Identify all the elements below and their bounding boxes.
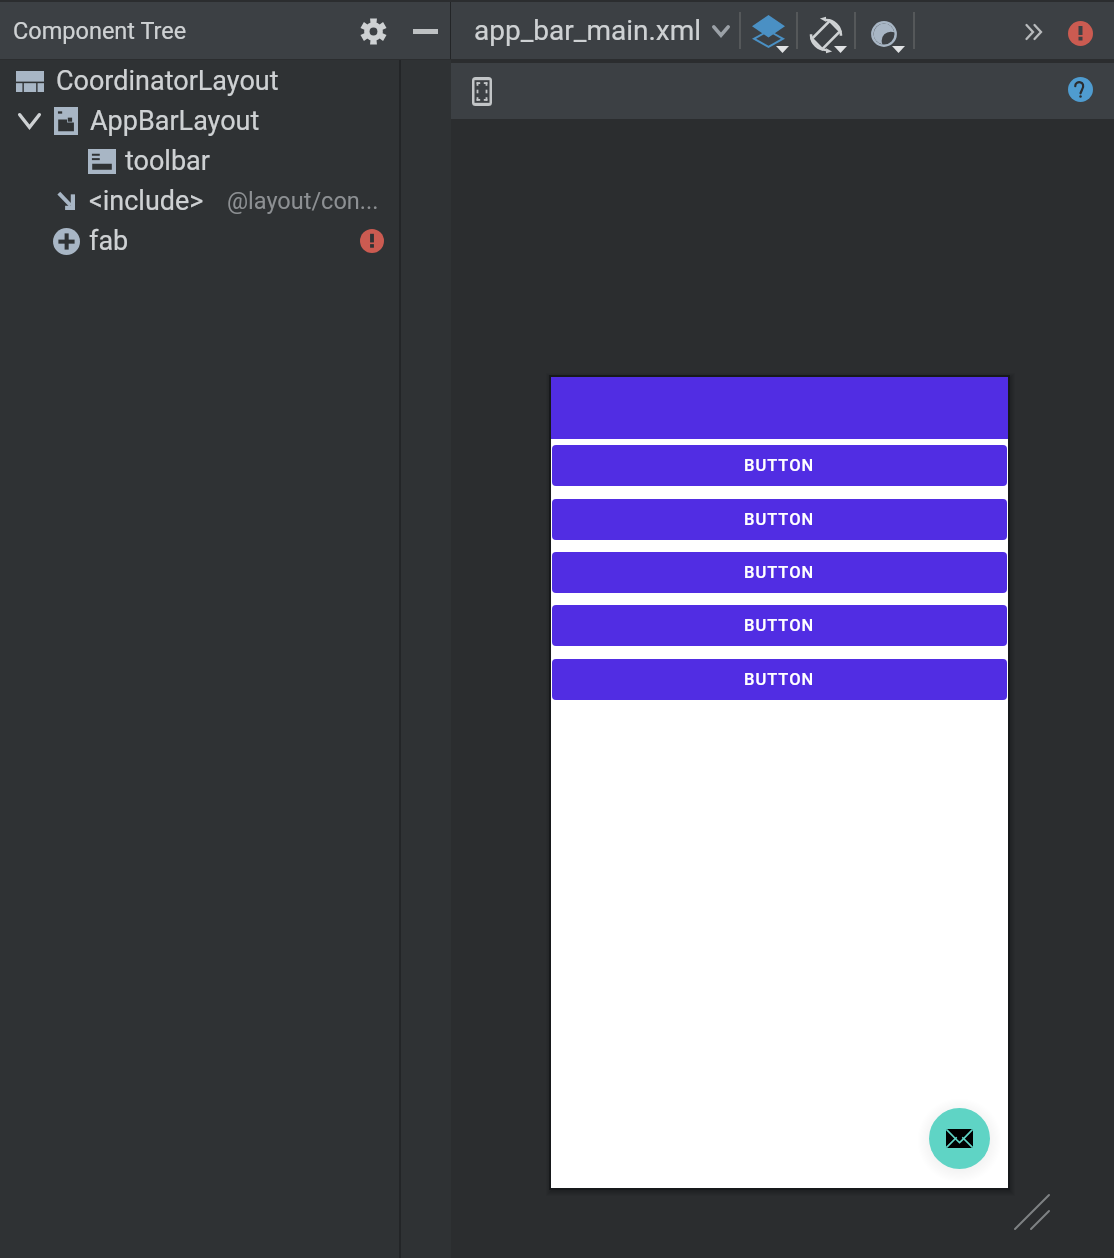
- button[interactable]: BUTTON: [552, 659, 1007, 700]
- button[interactable]: CoordinatorLayout: [0, 61, 399, 101]
- staticText: app_bar_main.xml: [474, 14, 702, 47]
- staticText: BUTTON: [744, 456, 815, 475]
- button[interactable]: Settings: [358, 16, 388, 46]
- staticText: AppBarLayout: [90, 105, 260, 137]
- button[interactable]: More options: [1016, 15, 1050, 49]
- button[interactable]: Orientation: [801, 8, 849, 54]
- staticText: <include>: [89, 185, 204, 217]
- staticText: BUTTON: [744, 616, 815, 635]
- button[interactable]: BUTTON: [552, 605, 1007, 646]
- button[interactable]: Issues: [1062, 15, 1098, 51]
- staticText: CoordinatorLayout: [56, 65, 279, 97]
- button[interactable]: fab: [0, 221, 399, 261]
- button[interactable]: Help: [1062, 71, 1098, 107]
- button[interactable]: BUTTON: [552, 499, 1007, 540]
- staticText: toolbar: [125, 145, 210, 177]
- staticText: Component Tree: [13, 17, 187, 45]
- staticText: @layout/con...: [227, 187, 379, 215]
- button[interactable]: toolbar: [0, 141, 399, 181]
- button[interactable]: Minimize: [408, 14, 442, 48]
- button[interactable]: Device: [462, 69, 502, 113]
- button[interactable]: BUTTON: [552, 552, 1007, 593]
- button[interactable]: Theme: [859, 8, 907, 54]
- staticText: BUTTON: [744, 670, 815, 689]
- staticText: BUTTON: [744, 563, 815, 582]
- staticText: fab: [89, 225, 129, 257]
- staticText: BUTTON: [744, 510, 815, 529]
- button[interactable]: Email: [929, 1108, 990, 1169]
- button[interactable]: AppBarLayout: [0, 101, 399, 141]
- button[interactable]: <include>: [0, 181, 399, 221]
- button[interactable]: BUTTON: [552, 445, 1007, 486]
- button[interactable]: app_bar_main.xml: [474, 14, 730, 47]
- button[interactable]: Show layout decorations: [743, 8, 791, 54]
